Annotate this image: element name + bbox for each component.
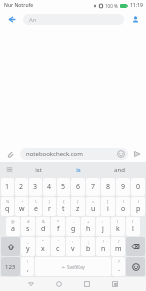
button[interactable]: An: [23, 14, 124, 25]
button[interactable]: }: [71, 197, 85, 216]
button[interactable]: ist: [18, 162, 58, 177]
button[interactable]: !: [96, 237, 110, 256]
staticText: 1: [5, 182, 10, 192]
staticText: is: [76, 166, 81, 174]
button[interactable]: Emoji: [114, 148, 128, 160]
staticText: !: [103, 239, 105, 244]
staticText: c: [56, 244, 60, 254]
staticText: ist: [35, 166, 42, 174]
button[interactable]: _: [21, 237, 35, 256]
button[interactable]: ): [131, 197, 145, 216]
button[interactable]: {: [57, 197, 70, 216]
staticText: :: [72, 239, 74, 244]
staticText: =: [92, 199, 95, 204]
button[interactable]: /: [111, 237, 125, 256]
button[interactable]: 3: [29, 178, 42, 196]
button[interactable]: !: [21, 257, 34, 276]
staticText: g: [71, 224, 76, 234]
button[interactable]: [: [101, 197, 115, 216]
button[interactable]: 1: [1, 178, 14, 196]
button[interactable]: Back: [0, 10, 23, 28]
button[interactable]: Emoji keyboard: [126, 257, 145, 276]
staticText: Nur Notrufe: [4, 2, 34, 9]
button[interactable]: 2: [15, 178, 28, 196]
button[interactable]: \: [29, 197, 42, 216]
staticText: 123: [5, 263, 16, 271]
staticText: ): [132, 219, 134, 224]
staticText: and: [114, 166, 125, 174]
button[interactable]: Send: [128, 145, 146, 162]
button[interactable]: @: [6, 217, 20, 236]
button[interactable]: ): [126, 217, 140, 236]
button[interactable]: +: [81, 217, 95, 236]
button[interactable]: |: [43, 197, 56, 216]
staticText: +: [87, 219, 90, 224]
staticText: d: [41, 224, 46, 234]
staticText: -: [73, 219, 75, 224]
button[interactable]: is: [58, 162, 99, 177]
button[interactable]: :: [96, 217, 110, 236]
staticText: /: [118, 239, 120, 244]
staticText: &: [42, 219, 45, 224]
button[interactable]: Space: [35, 257, 111, 276]
button[interactable]: Numbers and symbols: [1, 257, 20, 276]
staticText: ?: [118, 259, 120, 264]
button[interactable]: ': [51, 237, 65, 256]
staticText: {: [63, 199, 65, 204]
button[interactable]: Back: [17, 277, 45, 291]
button[interactable]: 5: [57, 178, 70, 196]
staticText: v: [71, 244, 75, 254]
button[interactable]: ": [36, 237, 50, 256]
button[interactable]: :: [66, 237, 80, 256]
button[interactable]: -: [66, 217, 80, 236]
staticText: q: [5, 204, 10, 214]
staticText: 100 %: [105, 3, 118, 9]
button[interactable]: =: [86, 197, 100, 216]
button[interactable]: Split screen: [101, 277, 129, 291]
button[interactable]: #: [21, 217, 35, 236]
button[interactable]: 0: [131, 178, 145, 196]
staticText: y: [26, 244, 30, 254]
button[interactable]: and: [99, 162, 140, 177]
staticText: 2: [19, 182, 24, 192]
staticText: }: [77, 199, 79, 204]
button[interactable]: &: [36, 217, 50, 236]
staticText: .: [118, 264, 120, 274]
staticText: 5: [61, 182, 66, 192]
staticText: 6: [76, 182, 81, 192]
button[interactable]: ;: [81, 237, 95, 256]
staticText: [: [107, 199, 109, 204]
button[interactable]: notebookcheck.com: [20, 148, 128, 160]
button[interactable]: %: [1, 197, 14, 216]
staticText: 3: [33, 182, 38, 192]
staticText: p: [136, 204, 141, 214]
button[interactable]: Keyboard menu: [0, 162, 18, 177]
button[interactable]: Recent apps: [73, 277, 101, 291]
button[interactable]: 4: [43, 178, 56, 196]
staticText: 8: [106, 182, 111, 192]
staticText: j: [102, 224, 104, 234]
staticText: ~: [21, 199, 24, 204]
button[interactable]: 7: [86, 178, 100, 196]
staticText: An: [29, 16, 37, 24]
button[interactable]: (: [111, 217, 125, 236]
staticText: k: [116, 224, 120, 234]
button[interactable]: Choose contact: [124, 10, 146, 28]
staticText: notebookcheck.com: [26, 150, 114, 158]
button[interactable]: 8: [101, 178, 115, 196]
button[interactable]: Add attachment: [0, 145, 20, 162]
button[interactable]: (: [116, 197, 130, 216]
button[interactable]: 9: [116, 178, 130, 196]
staticText: ,: [27, 264, 29, 274]
button[interactable]: Shift: [1, 237, 20, 256]
staticText: !: [27, 259, 29, 264]
button[interactable]: *: [51, 217, 65, 236]
button[interactable]: Backspace: [126, 237, 145, 256]
button[interactable]: ~: [15, 197, 28, 216]
staticText: a: [11, 224, 15, 234]
button[interactable]: ?: [112, 257, 125, 276]
button[interactable]: 6: [71, 178, 85, 196]
button[interactable]: Home: [45, 277, 73, 291]
staticText: o: [121, 204, 126, 214]
staticText: ): [138, 199, 140, 204]
